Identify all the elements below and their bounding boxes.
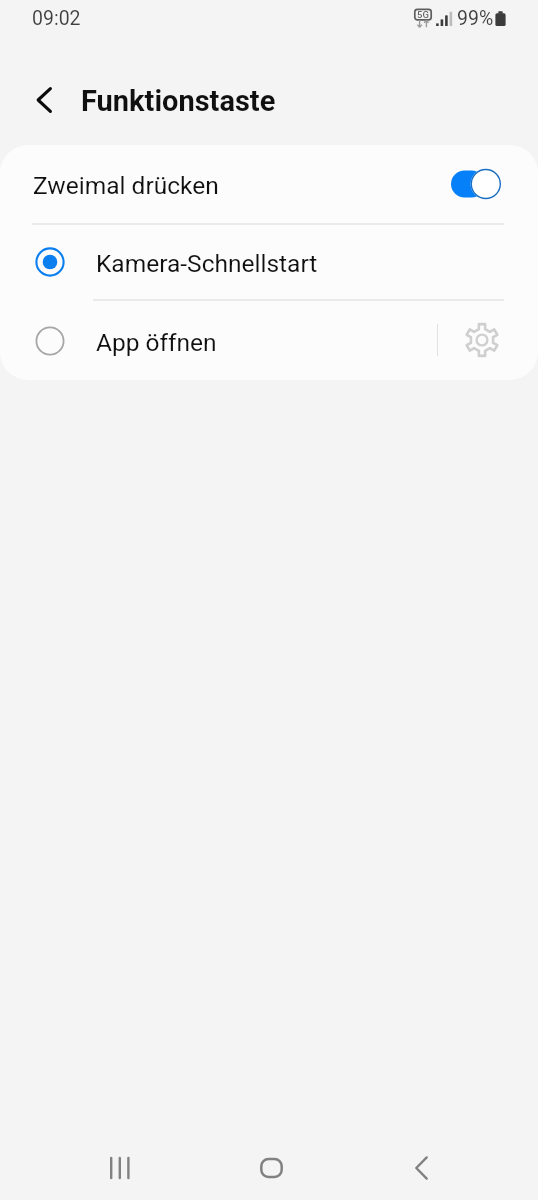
button[interactable]: Einstellungen xyxy=(448,299,516,380)
staticText: Zweimal drücken xyxy=(33,171,521,200)
button[interactable]: Kamera-Schnellstart xyxy=(0,223,538,299)
button[interactable]: Zurück xyxy=(23,76,71,124)
staticText: Funktionstaste xyxy=(81,84,276,118)
staticText: App öffnen xyxy=(96,328,217,357)
staticText: 09:02 xyxy=(32,7,81,30)
button[interactable]: Startbildschirm xyxy=(233,1136,309,1200)
button[interactable]: App öffnen xyxy=(0,299,435,380)
button[interactable]: Zweimal drücken xyxy=(0,145,538,223)
button[interactable]: Zurück xyxy=(383,1136,459,1200)
staticText: 99% xyxy=(457,7,494,30)
button[interactable]: Letzte Apps xyxy=(83,1136,159,1200)
staticText: Kamera-Schnellstart xyxy=(96,249,318,278)
staticText: 5G xyxy=(417,9,429,20)
